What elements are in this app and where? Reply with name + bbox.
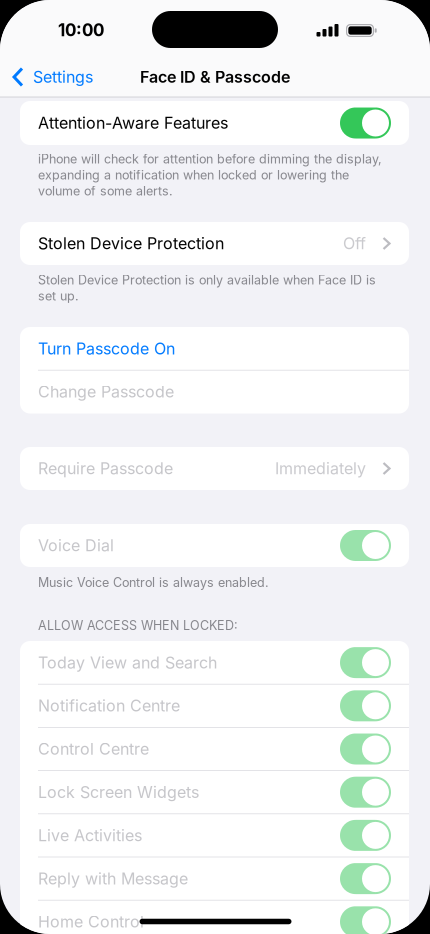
staticText: Reply with Message xyxy=(38,869,188,888)
staticText: Immediately xyxy=(275,459,366,478)
staticText: Face ID & Passcode xyxy=(140,67,290,87)
button[interactable]: Change Passcode xyxy=(20,370,409,413)
button[interactable]: Today View and Search xyxy=(20,641,409,684)
button[interactable]: Attention-Aware Features xyxy=(20,101,409,145)
staticText: Voice Dial xyxy=(38,536,114,555)
staticText: Lock Screen Widgets xyxy=(38,782,199,802)
staticText: Control Centre xyxy=(38,739,149,759)
staticText: Home Control xyxy=(38,912,144,931)
button[interactable]: Notification Centre xyxy=(20,684,409,727)
button[interactable]: Control Centre xyxy=(20,727,409,771)
button[interactable]: Back to Settings xyxy=(12,58,93,96)
staticText: Require Passcode xyxy=(38,459,173,478)
button[interactable]: Turn Passcode On xyxy=(20,327,409,370)
staticText: 10:00 xyxy=(58,20,104,40)
button[interactable]: Voice Dial xyxy=(20,524,409,567)
button[interactable]: Lock Screen Widgets xyxy=(20,771,409,814)
staticText: Music Voice Control is always enabled. xyxy=(38,575,269,590)
staticText: iPhone will check for attention before d… xyxy=(38,151,382,166)
staticText: Today View and Search xyxy=(38,653,217,672)
button[interactable]: Live Activities xyxy=(20,814,409,857)
staticText: expanding a notification when locked or … xyxy=(38,167,349,182)
staticText: Notification Centre xyxy=(38,696,180,715)
button[interactable]: Reply with Message xyxy=(20,857,409,900)
staticText: Settings xyxy=(33,67,93,87)
staticText: set up. xyxy=(38,288,79,303)
staticText: Stolen Device Protection xyxy=(38,234,224,253)
staticText: Live Activities xyxy=(38,826,142,845)
staticText: Change Passcode xyxy=(38,382,174,401)
staticText: Stolen Device Protection is only availab… xyxy=(38,272,376,287)
button[interactable]: Stolen Device Protection xyxy=(20,222,409,265)
button[interactable]: Home Control xyxy=(20,900,409,934)
staticText: volume of some alerts. xyxy=(38,183,173,198)
staticText: Off xyxy=(343,234,366,253)
staticText: ALLOW ACCESS WHEN LOCKED: xyxy=(38,618,238,633)
staticText: Turn Passcode On xyxy=(38,339,175,358)
staticText: Attention-Aware Features xyxy=(38,113,228,133)
button[interactable]: Require Passcode xyxy=(20,447,409,490)
